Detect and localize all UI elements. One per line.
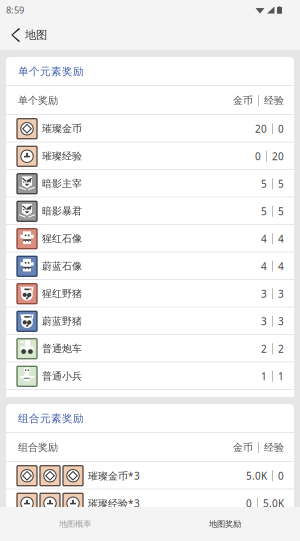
button[interactable]: 璀璨经验*3 xyxy=(6,489,294,517)
staticText: 1 xyxy=(278,369,284,383)
button[interactable]: 璀璨经验 xyxy=(6,142,294,170)
button[interactable]: 暗影暴君 xyxy=(6,197,294,225)
staticText: 普通小兵 xyxy=(42,370,82,383)
staticText: 暗影暴君 xyxy=(42,205,82,218)
staticText: 20 xyxy=(255,122,267,135)
staticText: 组合奖励 xyxy=(18,441,58,454)
staticText: 0 xyxy=(246,496,252,510)
button[interactable]: 普通炮车 xyxy=(6,335,294,362)
staticText: 璀璨金币 xyxy=(42,122,82,135)
button[interactable]: 璀璨金币*3 xyxy=(6,462,294,489)
staticText: 经验 xyxy=(264,441,284,454)
button[interactable]: 地图概率 xyxy=(0,507,150,541)
staticText: 8:59 xyxy=(6,4,24,16)
staticText: 璀璨经验*3 xyxy=(88,496,140,510)
button[interactable]: 璀璨金币 xyxy=(6,115,294,142)
staticText: 地图奖励 xyxy=(209,519,241,529)
staticText: 普通炮车 xyxy=(42,342,82,355)
staticText: 地图 xyxy=(25,28,47,42)
staticText: 0 xyxy=(278,469,284,482)
staticText: 5 xyxy=(261,204,267,218)
staticText: 地图概率 xyxy=(59,519,91,529)
staticText: 璀璨经验 xyxy=(42,150,82,163)
button[interactable]: 猩红野猪 xyxy=(6,280,294,307)
staticText: 经验 xyxy=(264,94,284,107)
button[interactable]: 蔚蓝野猪 xyxy=(6,307,294,335)
staticText: 3 xyxy=(278,314,284,328)
staticText: 4 xyxy=(261,232,267,245)
staticText: 3 xyxy=(261,287,267,300)
button[interactable]: 蔚蓝石像 xyxy=(6,252,294,280)
staticText: 金币 xyxy=(233,94,253,107)
staticText: 0 xyxy=(255,149,261,163)
button[interactable]: 返回 xyxy=(5,20,25,50)
staticText: 暗影主宰 xyxy=(42,177,82,190)
staticText: 璀璨金币*3 xyxy=(88,469,140,482)
staticText: 3 xyxy=(261,314,267,328)
staticText: 4 xyxy=(278,232,284,245)
button[interactable]: 暗影主宰 xyxy=(6,170,294,197)
staticText: 5.0K xyxy=(246,469,267,482)
staticText: 4 xyxy=(278,259,284,273)
staticText: 2 xyxy=(261,342,267,355)
staticText: 猩红野猪 xyxy=(42,287,82,300)
staticText: 单个奖励 xyxy=(18,94,58,107)
staticText: 3 xyxy=(278,287,284,300)
staticText: 1 xyxy=(261,369,267,383)
button[interactable]: 普通小兵 xyxy=(6,362,294,390)
staticText: 猩红石像 xyxy=(42,232,82,245)
staticText: 5 xyxy=(261,177,267,190)
staticText: 5.0K xyxy=(263,496,284,510)
staticText: 20 xyxy=(272,149,284,163)
staticText: 5 xyxy=(278,177,284,190)
button[interactable]: 猩红石像 xyxy=(6,225,294,252)
staticText: 5 xyxy=(278,204,284,218)
staticText: 金币 xyxy=(233,441,253,454)
staticText: 单个元素奖励 xyxy=(18,65,84,78)
staticText: 组合元素奖励 xyxy=(18,412,84,425)
staticText: 2 xyxy=(278,342,284,355)
staticText: 4 xyxy=(261,259,267,273)
staticText: 蔚蓝石像 xyxy=(42,260,82,273)
staticText: 蔚蓝野猪 xyxy=(42,315,82,328)
button[interactable]: 地图奖励 xyxy=(150,507,300,541)
staticText: 0 xyxy=(278,122,284,135)
